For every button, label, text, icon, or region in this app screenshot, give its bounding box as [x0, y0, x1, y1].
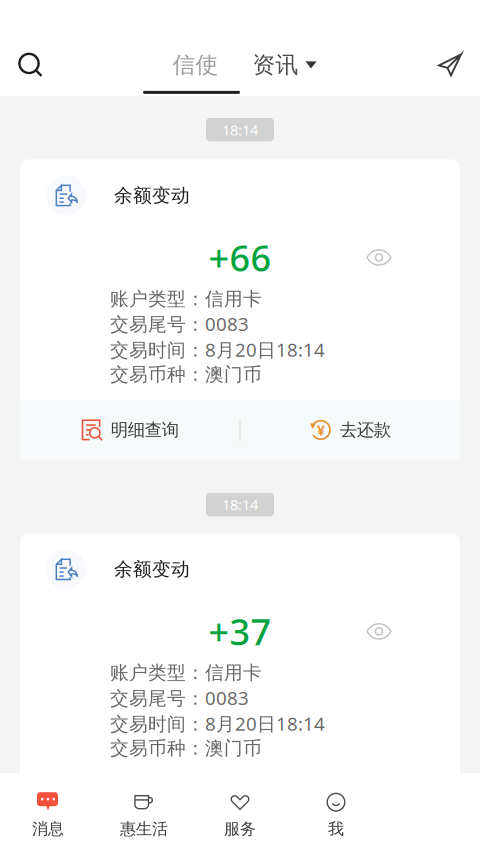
staticText: 交易时间：8月20日18:14 — [110, 337, 325, 362]
staticText: 账户类型：信用卡 — [110, 287, 262, 310]
staticText: 明细查询 — [111, 793, 179, 814]
button[interactable]: 发送 — [430, 47, 470, 83]
staticText: 交易时间：8月20日18:14 — [110, 711, 325, 736]
staticText: 资讯 — [252, 51, 298, 79]
staticText: ¥ — [317, 420, 325, 440]
staticText: +37 — [208, 607, 271, 655]
staticText: 明细查询 — [111, 419, 179, 441]
staticText: 交易币种：澳门币 — [110, 363, 262, 386]
staticText: 去还款 — [340, 793, 391, 814]
button[interactable]: 惠生活 — [96, 791, 192, 839]
staticText: +66 — [208, 234, 271, 281]
button[interactable]: 隐藏金额 — [366, 618, 460, 644]
button[interactable]: 明细查询 — [20, 774, 239, 834]
staticText: 惠生活 — [120, 819, 168, 839]
button[interactable]: 信使 — [158, 45, 232, 85]
button[interactable]: 资讯 — [246, 45, 322, 85]
staticText: 交易币种：澳门币 — [110, 737, 262, 760]
staticText: 账户类型：信用卡 — [110, 661, 262, 684]
button[interactable]: ¥ — [240, 774, 460, 834]
button[interactable]: 我 — [288, 791, 384, 839]
staticText: 信使 — [172, 51, 218, 79]
staticText: 18:14 — [222, 120, 258, 139]
button[interactable]: 服务 — [192, 791, 288, 839]
staticText: 18:14 — [222, 495, 258, 514]
staticText: 消息 — [32, 819, 64, 839]
button[interactable]: 隐藏金额 — [366, 244, 460, 270]
button[interactable]: 搜索 — [10, 46, 51, 83]
staticText: 交易尾号：0083 — [110, 685, 249, 710]
staticText: 余额变动 — [114, 184, 190, 207]
staticText: 服务 — [224, 819, 256, 839]
staticText: 我 — [328, 819, 344, 839]
button[interactable]: 明细查询 — [20, 400, 239, 460]
staticText: 去还款 — [340, 419, 391, 441]
button[interactable]: ¥ — [240, 400, 460, 460]
staticText: 交易尾号：0083 — [110, 311, 249, 336]
button[interactable]: 消息 — [0, 791, 96, 839]
staticText: 余额变动 — [114, 558, 190, 581]
